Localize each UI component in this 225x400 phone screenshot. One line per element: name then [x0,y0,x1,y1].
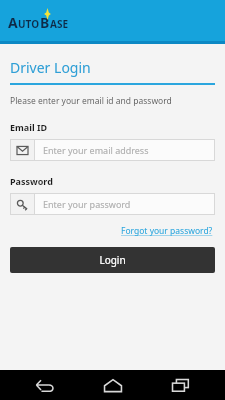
staticText: Password [10,175,53,187]
staticText: Enter your password [43,198,131,210]
button[interactable]: Back [23,370,67,400]
staticText: B [40,13,50,32]
staticText: Driver Login [10,58,91,77]
staticText: Enter your email address [43,144,149,156]
button[interactable]: Recent apps [158,370,202,400]
button[interactable]: Forgot your password? [119,223,215,239]
button[interactable]: Enter your email address [10,139,215,161]
button[interactable]: Enter your password [10,193,215,215]
staticText: Email ID [10,121,48,133]
button[interactable]: Home [91,370,135,400]
staticText: UTO [18,17,40,31]
staticText: A [8,13,18,32]
button[interactable]: Login [10,247,215,273]
staticText: Please enter your email id and password [10,95,172,107]
staticText: ASE [50,17,69,31]
staticText: Login [99,253,126,267]
staticText: Forgot your password? [121,225,213,237]
